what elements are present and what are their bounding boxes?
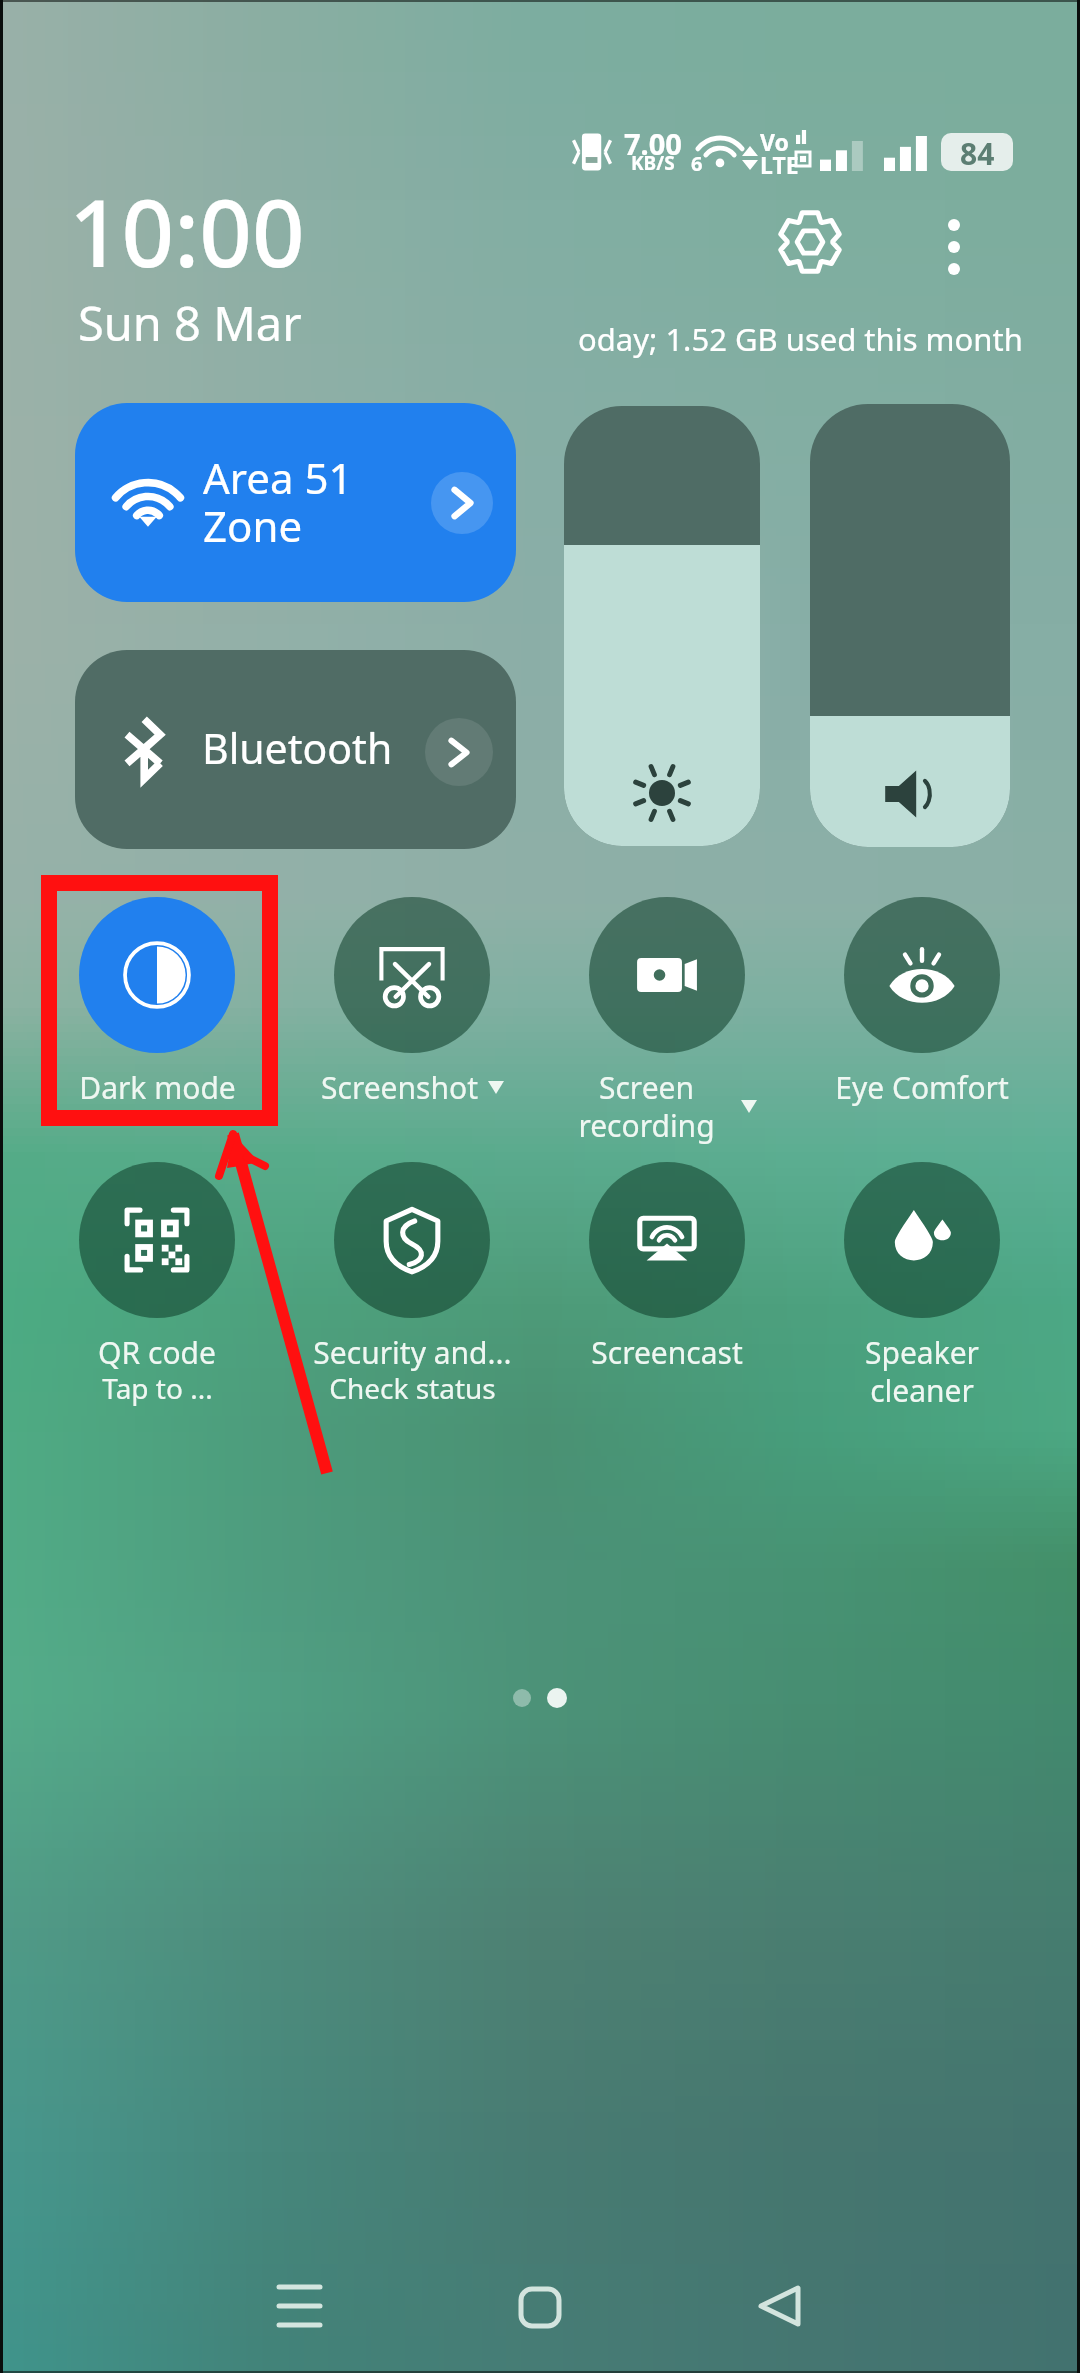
staticText: Vo: [760, 126, 789, 157]
button[interactable]: Settings: [764, 196, 856, 288]
staticText: KB/S: [631, 150, 675, 176]
staticText: Dark mode: [79, 1067, 236, 1108]
staticText: 7.00: [624, 124, 682, 163]
button[interactable]: Recents: [239, 2246, 359, 2366]
staticText: Eye Comfort: [835, 1067, 1009, 1108]
button[interactable]: Screenshot: [285, 897, 539, 1147]
staticText: Screen recording: [578, 1067, 715, 1146]
button[interactable]: Security and...: [285, 1162, 539, 1412]
staticText: Sun 8 Mar: [78, 291, 302, 355]
staticText: Screencast: [591, 1332, 743, 1373]
staticText: Security and...: [313, 1332, 512, 1373]
button[interactable]: More options: [908, 202, 1000, 292]
staticText: QR code: [98, 1332, 216, 1373]
button[interactable]: Speaker cleaner: [795, 1162, 1049, 1412]
button[interactable]: Eye Comfort: [795, 897, 1049, 1147]
staticText: 10:00: [69, 169, 305, 294]
staticText: Bluetooth: [202, 720, 393, 776]
staticText: 6: [691, 150, 703, 177]
button[interactable]: Back: [719, 2246, 839, 2366]
button[interactable]: Screencast: [540, 1162, 794, 1412]
button[interactable]: Area 51 Zone: [75, 403, 516, 602]
button[interactable]: Screen recording: [540, 897, 794, 1147]
staticText: Area 51 Zone: [203, 449, 353, 554]
staticText: Screenshot: [321, 1067, 478, 1108]
button[interactable]: Home: [480, 2247, 600, 2367]
button[interactable]: Volume: [810, 404, 1010, 847]
staticText: Tap to ...: [102, 1369, 213, 1407]
button[interactable]: Bluetooth: [75, 650, 516, 849]
staticText: Check status: [329, 1369, 496, 1407]
button[interactable]: Brightness: [564, 406, 760, 846]
staticText: oday; 1.52 GB used this month: [578, 318, 1023, 360]
button[interactable]: Dark mode: [30, 897, 284, 1147]
staticText: Speaker cleaner: [865, 1332, 979, 1411]
staticText: 84: [960, 133, 995, 171]
staticText: LTE: [760, 149, 799, 180]
button[interactable]: QR code: [30, 1162, 284, 1412]
